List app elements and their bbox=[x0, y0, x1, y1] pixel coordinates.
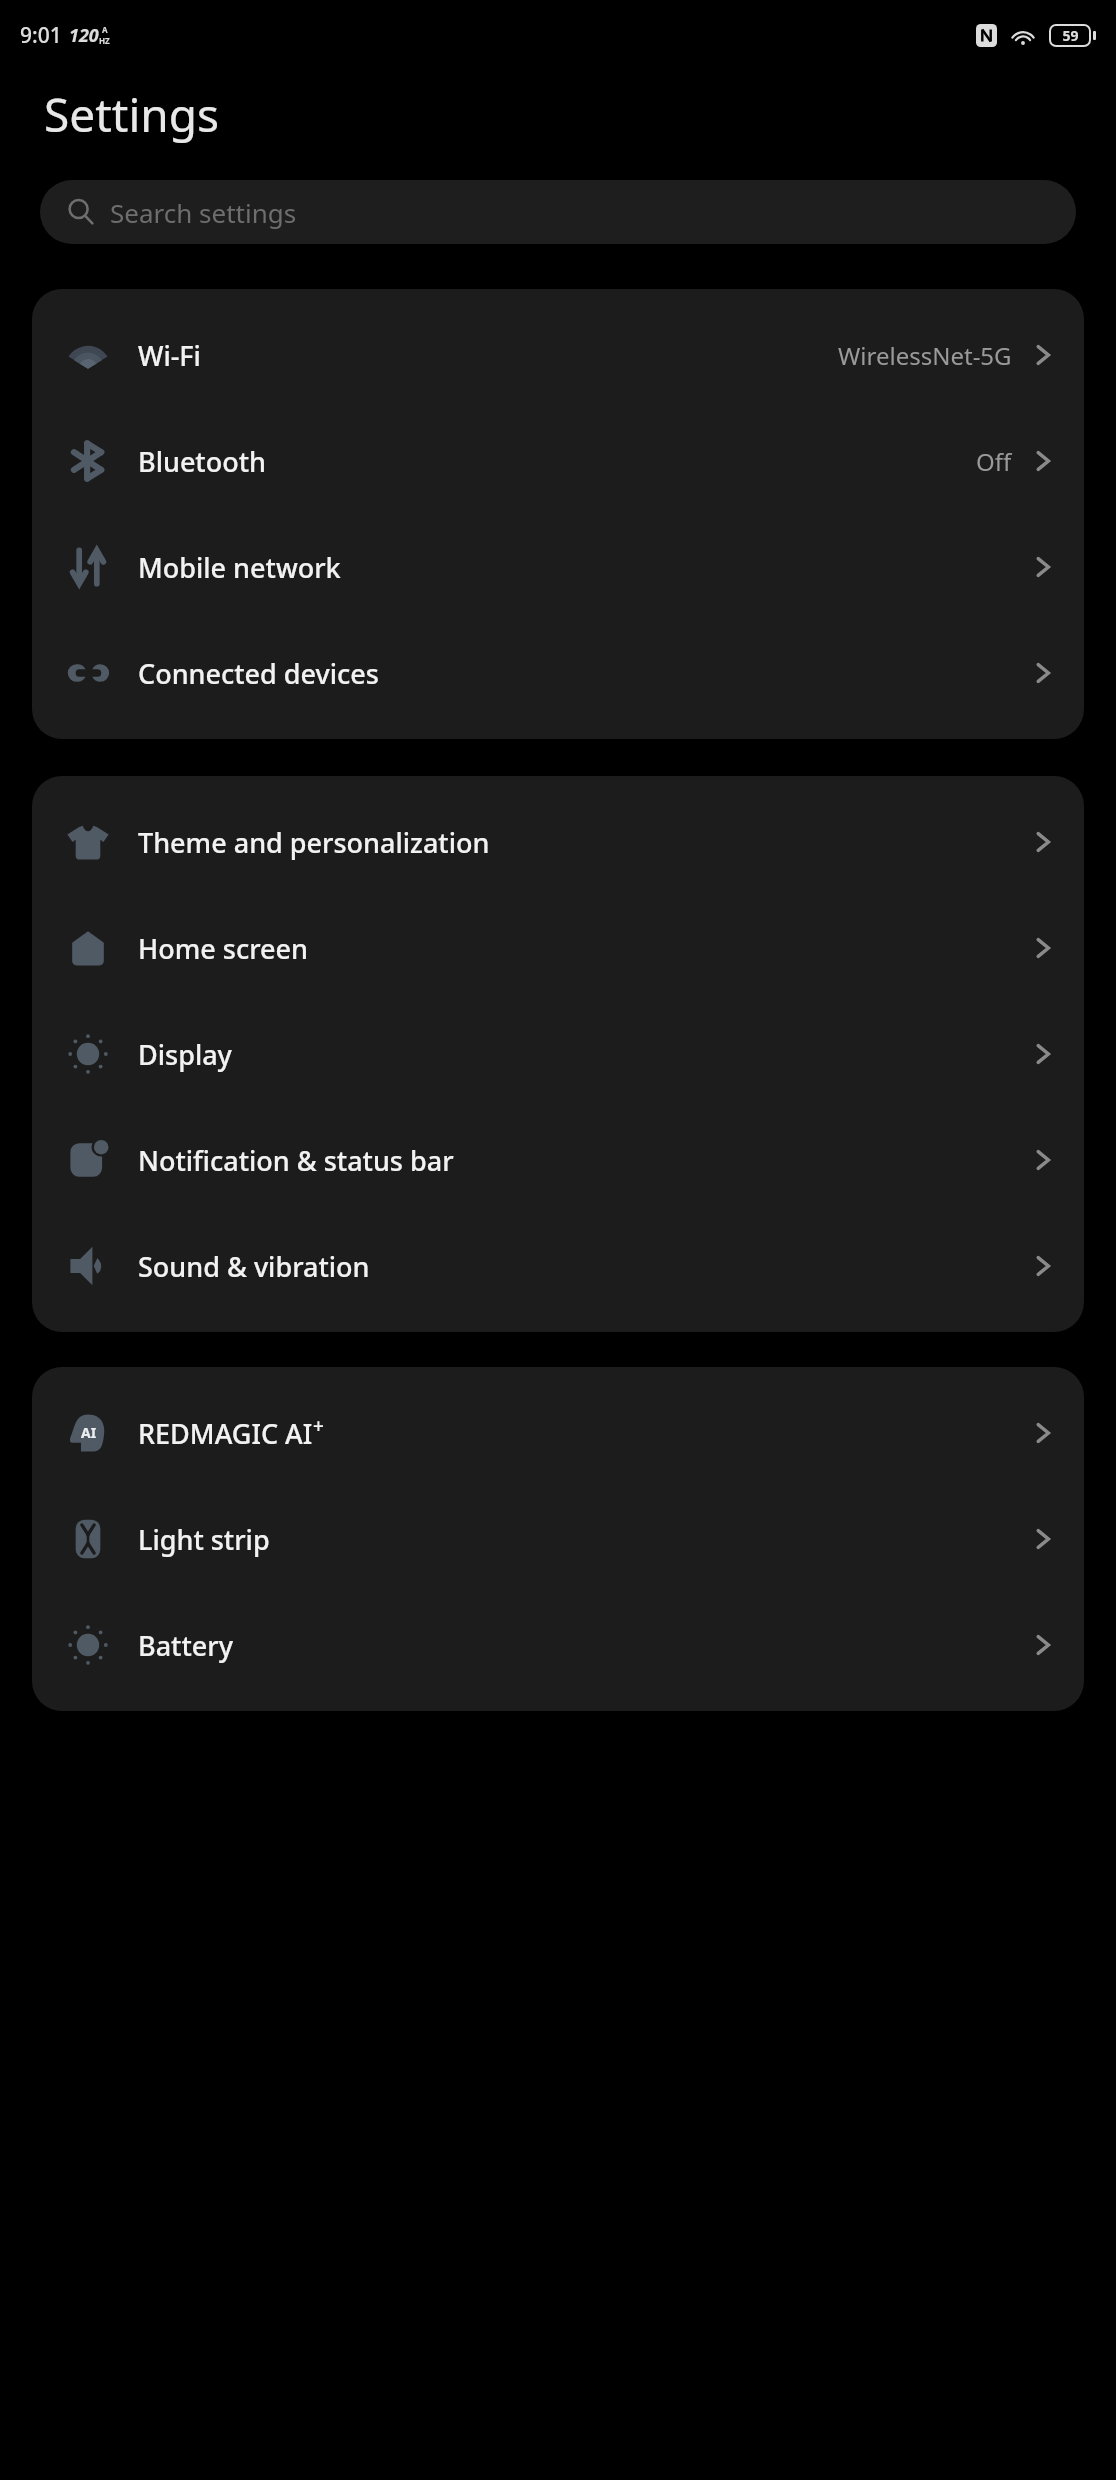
staticText: Notification & status bar bbox=[138, 1142, 454, 1179]
button[interactable]: AI bbox=[32, 1380, 1084, 1486]
button[interactable]: Search settings bbox=[40, 180, 1076, 244]
staticText: Theme and personalization bbox=[138, 824, 490, 861]
staticText: + bbox=[313, 1413, 324, 1439]
staticText: 9:01 bbox=[20, 21, 62, 50]
button[interactable]: Notification & status bar bbox=[32, 1107, 1084, 1213]
staticText: Display bbox=[138, 1036, 232, 1073]
staticText: Off bbox=[976, 445, 1012, 478]
staticText: AI bbox=[81, 1423, 97, 1442]
staticText: A bbox=[102, 24, 108, 35]
staticText: Search settings bbox=[110, 195, 297, 230]
button[interactable]: Light strip bbox=[32, 1486, 1084, 1592]
staticText: Sound & vibration bbox=[138, 1248, 370, 1285]
button[interactable]: Bluetooth bbox=[32, 408, 1084, 514]
button[interactable]: Home screen bbox=[32, 895, 1084, 1001]
staticText: Battery bbox=[138, 1627, 233, 1664]
button[interactable]: Battery bbox=[32, 1592, 1084, 1698]
staticText: HZ bbox=[99, 35, 110, 46]
staticText: 59 bbox=[1062, 26, 1079, 45]
button[interactable]: Display bbox=[32, 1001, 1084, 1107]
button[interactable]: Wi-Fi bbox=[32, 302, 1084, 408]
button[interactable]: Theme and personalization bbox=[32, 789, 1084, 895]
staticText: REDMAGIC AI bbox=[138, 1415, 313, 1452]
staticText: WirelessNet-5G bbox=[838, 339, 1012, 372]
staticText: Mobile network bbox=[138, 549, 341, 586]
button[interactable]: Connected devices bbox=[32, 620, 1084, 726]
staticText: Settings bbox=[44, 83, 220, 146]
staticText: 120 bbox=[69, 23, 99, 48]
button[interactable]: Sound & vibration bbox=[32, 1213, 1084, 1319]
staticText: Light strip bbox=[138, 1521, 270, 1558]
staticText: Connected devices bbox=[138, 655, 379, 692]
button[interactable]: Mobile network bbox=[32, 514, 1084, 620]
staticText: Wi-Fi bbox=[138, 337, 201, 374]
staticText: Bluetooth bbox=[138, 443, 266, 480]
staticText: Home screen bbox=[138, 930, 308, 967]
